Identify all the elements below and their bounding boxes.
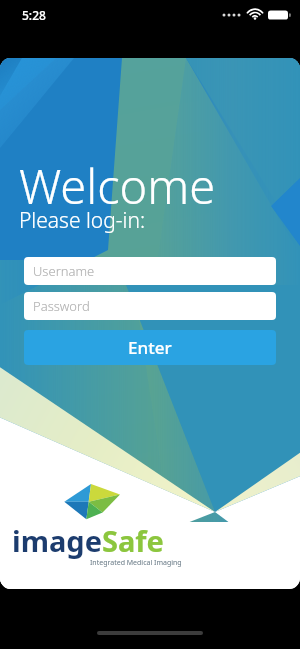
staticText: Password [33,297,90,315]
staticText: 5:28 [22,7,46,23]
staticText: Enter [128,336,172,359]
button[interactable]: Password [24,292,276,320]
staticText: Safe [102,521,164,560]
staticText: Username [33,262,95,280]
staticText: image [12,521,102,560]
staticText: Welcome [19,154,216,218]
staticText: Integrated Medical Imaging [90,558,182,568]
staticText: Please log-in: [19,206,146,235]
button[interactable]: Username [24,257,276,285]
button[interactable]: Enter [24,330,276,365]
